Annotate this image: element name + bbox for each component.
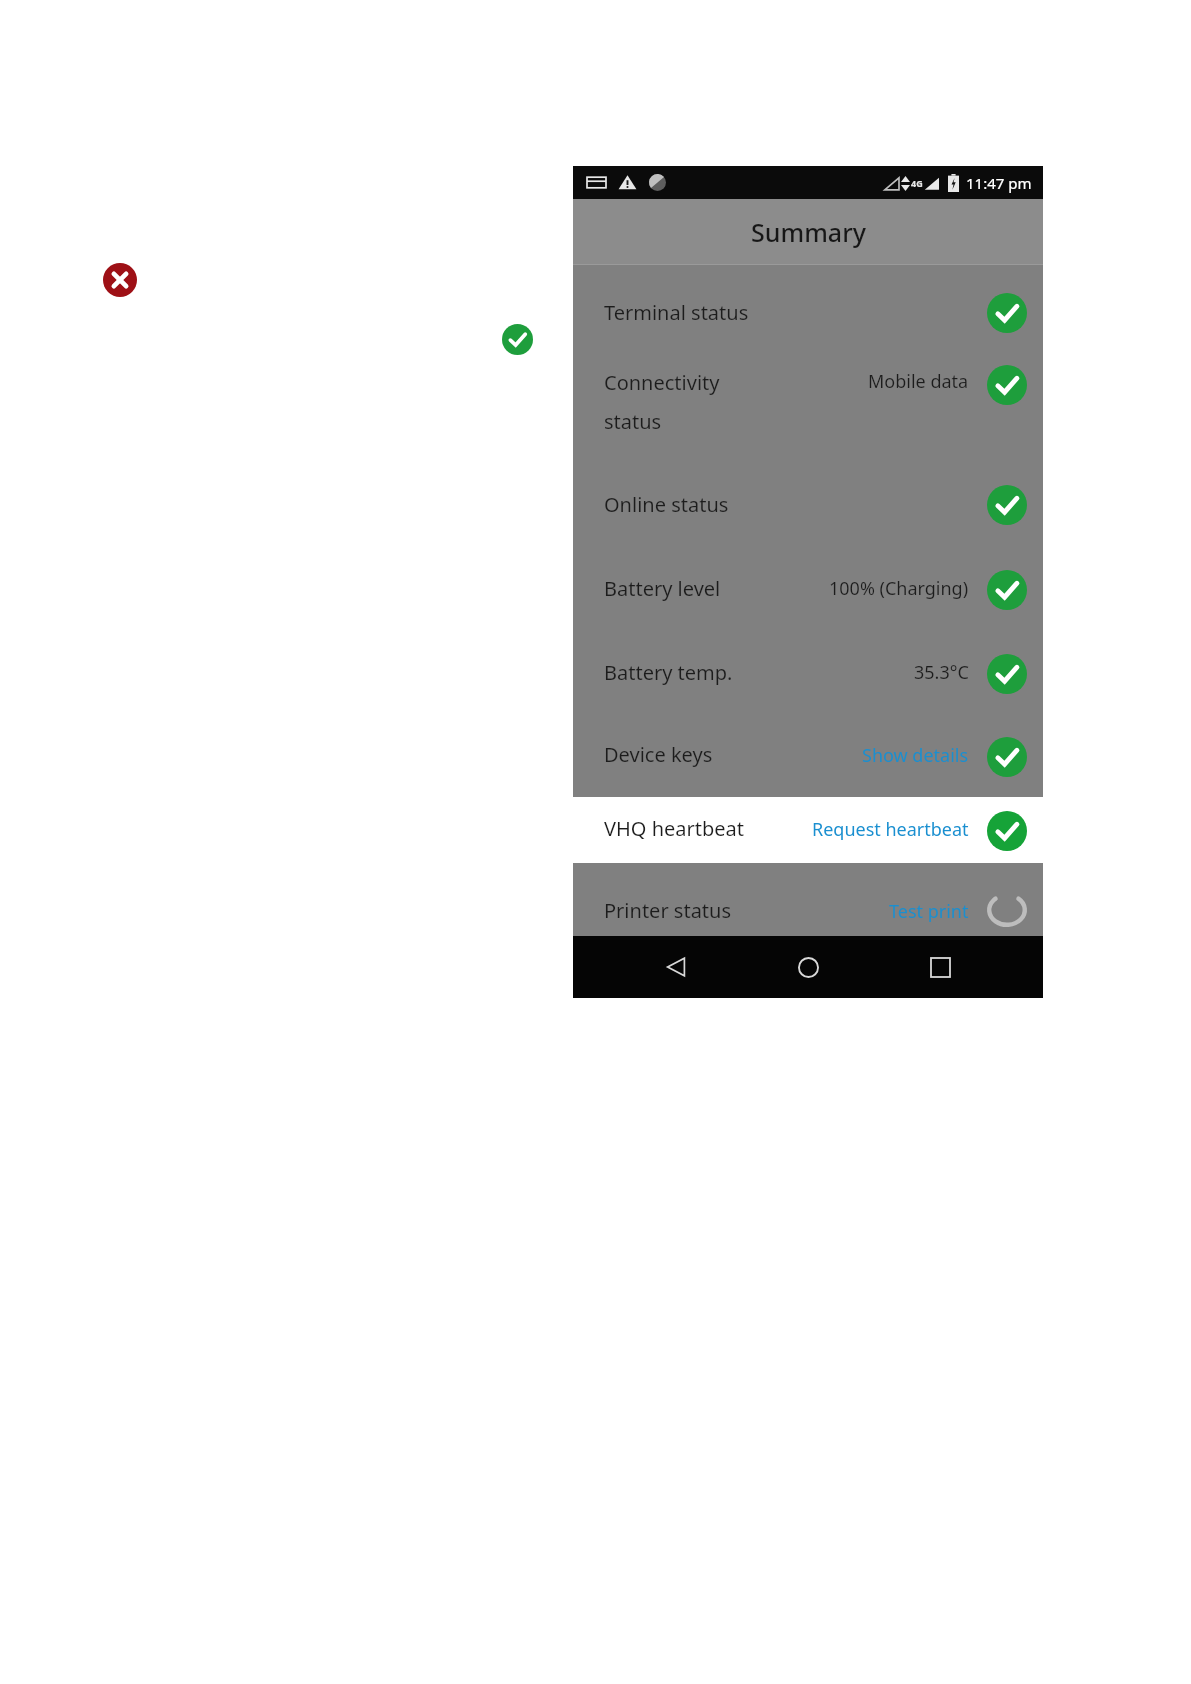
button[interactable]: Device keys [573,717,1043,797]
other: Loading [987,893,1027,927]
other: OK [987,737,1027,777]
staticText: Mobile data [868,369,969,394]
other: OK [987,654,1027,694]
other: OK [987,485,1027,525]
other: OK [987,570,1027,610]
staticText: Online status [604,491,729,518]
other: OK [987,365,1027,405]
button[interactable]: Home [779,938,837,996]
staticText: 35.3°C [914,660,969,685]
staticText: Terminal status [604,299,749,326]
button[interactable]: Test print [889,899,969,924]
staticText: Printer status [604,897,732,924]
button[interactable]: Show details [862,743,969,768]
staticText: Battery temp. [604,659,733,686]
other: Error [103,263,137,297]
staticText: Device keys [604,741,713,768]
other: OK [987,811,1027,851]
button[interactable]: Request heartbeat [812,817,969,842]
button[interactable]: Printer status [573,863,1043,927]
staticText: Battery level [604,575,721,602]
button[interactable]: Recents [911,938,969,996]
staticText: 11:47 pm [966,173,1032,193]
staticText: 4G [911,177,923,189]
button[interactable]: Terminal status [573,265,1043,349]
button[interactable]: Online status [573,465,1043,549]
button[interactable]: VHQ heartbeat [573,797,1043,863]
staticText: Summary [751,215,866,249]
other: OK [987,293,1027,333]
button[interactable]: Back [647,938,705,996]
button[interactable]: Connectivity status [573,349,1043,465]
button[interactable]: Battery level [573,549,1043,633]
staticText: VHQ heartbeat [604,815,744,842]
button[interactable]: Battery temp. [573,633,1043,717]
other: Success [502,324,533,355]
staticText: Connectivity status [604,369,720,435]
staticText: 100% (Charging) [829,576,969,601]
